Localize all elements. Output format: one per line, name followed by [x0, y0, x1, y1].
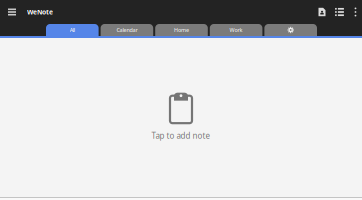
button[interactable] [264, 24, 317, 36]
staticText: Calendar [116, 26, 137, 34]
button[interactable]: Calendar [101, 24, 153, 36]
button[interactable]: More options [349, 0, 362, 24]
staticText: Work [230, 26, 243, 34]
button[interactable]: Work [210, 24, 262, 36]
button[interactable]: Home [155, 24, 208, 36]
button[interactable]: All [46, 24, 99, 36]
button[interactable]: Menu [2, 0, 22, 24]
staticText: Tap to add note [151, 130, 210, 141]
staticText: WeNote [27, 8, 53, 16]
staticText: Home [174, 26, 189, 34]
staticText: All [70, 26, 75, 34]
button[interactable]: Tap to add note [151, 91, 210, 141]
button[interactable]: Switch layout [330, 0, 349, 24]
button[interactable]: New note [314, 0, 330, 24]
